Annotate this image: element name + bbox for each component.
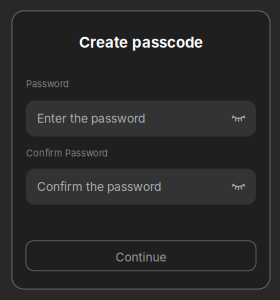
staticText: Enter the password <box>37 111 145 126</box>
button[interactable]: Continue <box>26 241 256 271</box>
staticText: Continue <box>115 250 166 264</box>
staticText: Confirm Password <box>26 147 108 159</box>
staticText: Password <box>26 78 69 89</box>
staticText: Confirm the password <box>37 179 161 194</box>
button[interactable]: Confirm the password <box>26 169 256 205</box>
button[interactable]: Enter the password <box>26 100 256 136</box>
staticText: Create passcode <box>79 33 203 51</box>
